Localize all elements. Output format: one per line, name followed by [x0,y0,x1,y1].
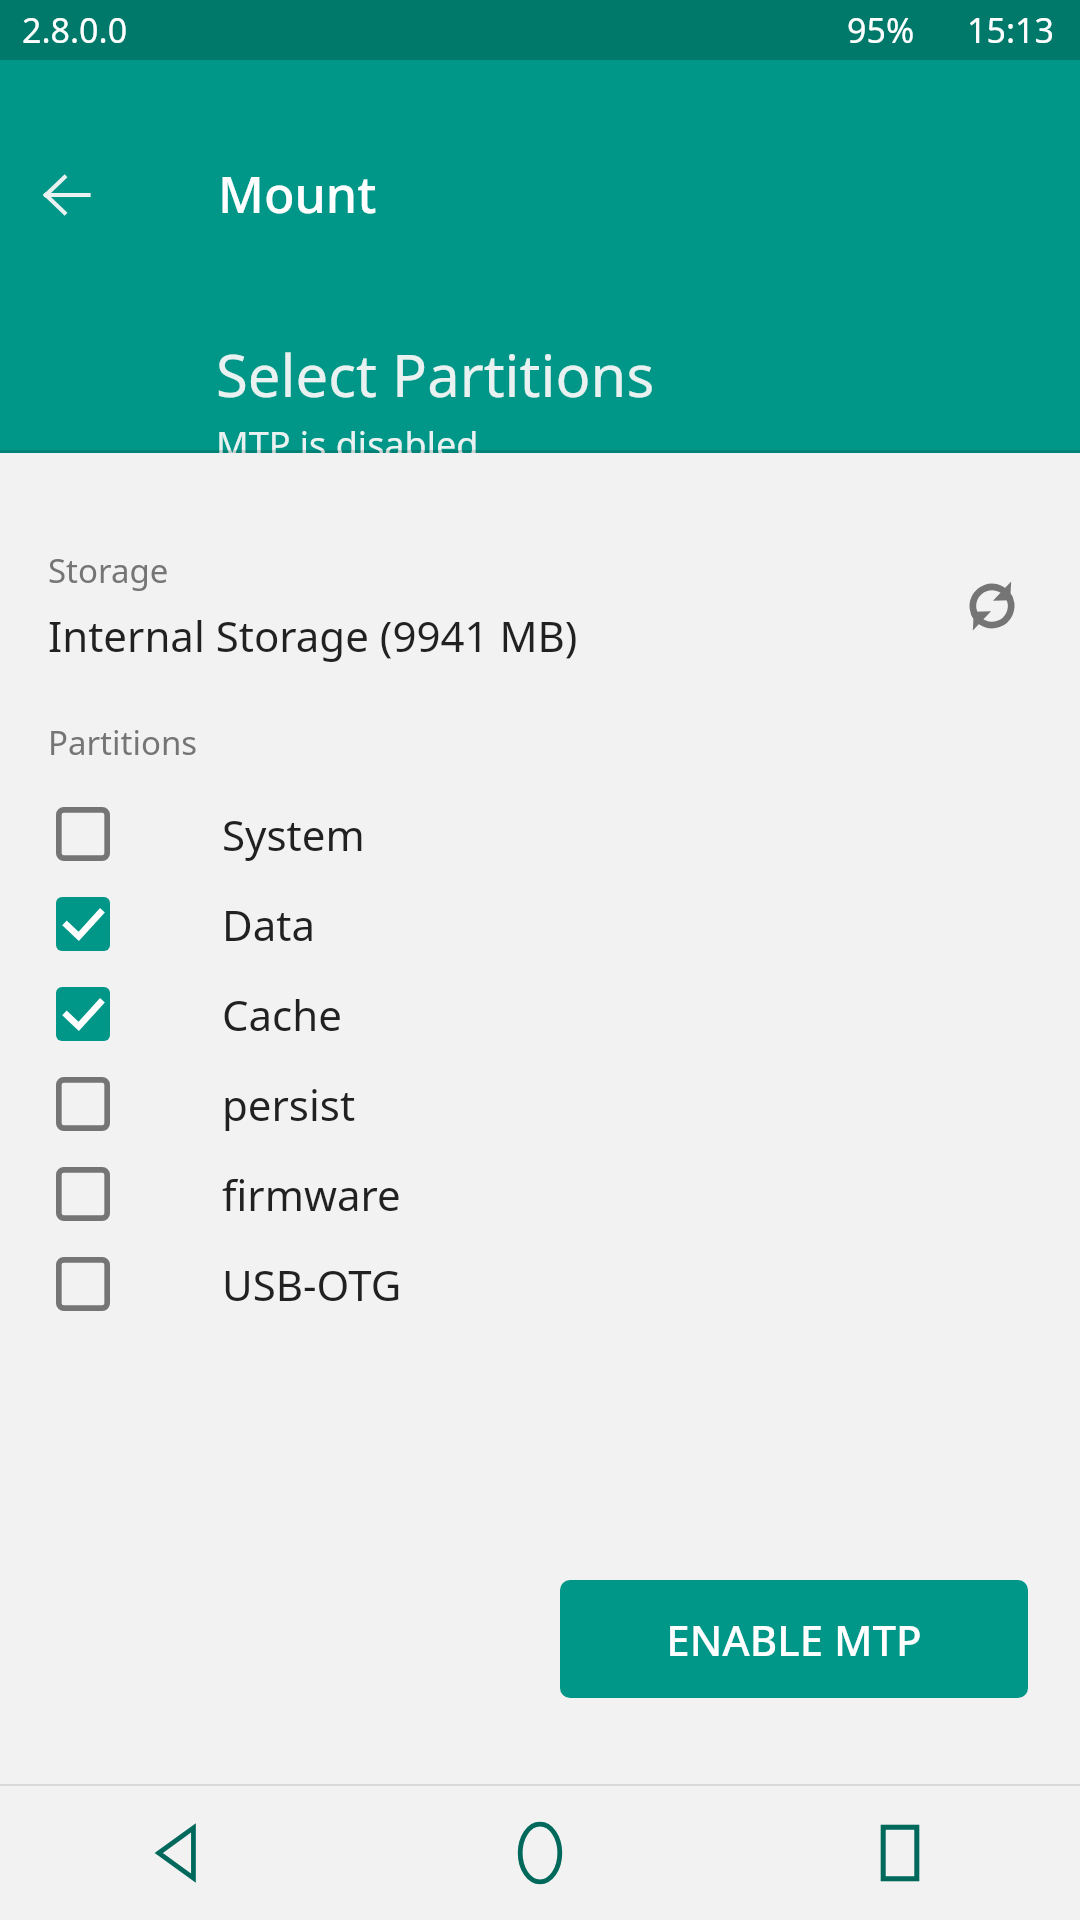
button[interactable]: ENABLE MTP [560,1580,1028,1698]
button[interactable]: Data [0,879,1080,969]
staticText: Select Partitions [216,335,655,414]
button[interactable]: firmware [0,1149,1080,1239]
staticText: Mount [218,160,377,228]
staticText: Data [222,896,315,953]
button[interactable]: Cache [0,969,1080,1059]
button[interactable]: USB-OTG [0,1239,1080,1329]
staticText: firmware [222,1166,401,1223]
staticText: Storage [48,548,169,593]
staticText: Partitions [48,720,198,765]
staticText: persist [222,1076,356,1133]
button[interactable]: Back [0,1786,360,1920]
button[interactable]: System [0,789,1080,879]
staticText: USB-OTG [222,1256,402,1313]
staticText: ENABLE MTP [666,1611,922,1668]
staticText: Cache [222,986,342,1043]
button[interactable]: Refresh [944,558,1040,654]
staticText: System [222,806,365,863]
button[interactable]: Storage [0,548,1080,664]
button[interactable]: Back [28,156,106,234]
button[interactable]: persist [0,1059,1080,1149]
staticText: 95% [847,7,915,53]
staticText: 2.8.0.0 [22,7,128,53]
staticText: MTP is disabled [216,420,479,453]
button[interactable]: Recents [720,1786,1080,1920]
staticText: 15:13 [967,7,1054,53]
button[interactable]: Home [360,1786,720,1920]
staticText: Internal Storage (9941 MB) [48,607,578,664]
